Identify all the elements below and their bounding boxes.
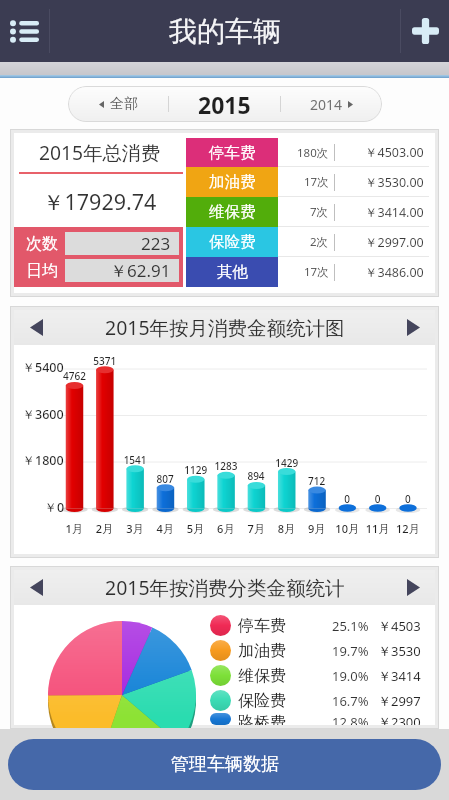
staticText: 19.0% <box>332 667 369 685</box>
staticText: 16.7% <box>332 692 369 710</box>
staticText: 其他 <box>217 262 248 282</box>
button[interactable]: Next <box>391 310 435 345</box>
button[interactable]: 保险费 <box>210 688 435 713</box>
staticText: 维保费 <box>209 202 256 222</box>
button[interactable]: Add <box>401 0 449 62</box>
staticText: 次数 <box>26 234 58 254</box>
button[interactable]: Previous <box>14 570 58 605</box>
staticText: 17次 <box>304 264 329 280</box>
staticText: 25.1% <box>332 617 369 635</box>
staticText: ￥2997 <box>378 692 421 710</box>
staticText: 2014 <box>310 95 343 114</box>
staticText: ￥3530 <box>378 642 421 660</box>
staticText: ￥2300 <box>378 713 421 725</box>
staticText: 7次 <box>310 204 329 220</box>
staticText: 加油费 <box>209 172 256 192</box>
staticText: 2015年按消费分类金额统计 <box>105 574 345 601</box>
staticText: ￥62.91 <box>110 259 171 282</box>
button[interactable]: 维保费 <box>210 663 435 688</box>
staticText: 2015年按月消费金额统计图 <box>105 314 345 341</box>
staticText: 2015 <box>198 89 251 120</box>
staticText: 2015年总消费 <box>39 139 161 165</box>
staticText: 223 <box>141 232 171 255</box>
staticText: 维保费 <box>238 666 286 686</box>
staticText: 停车费 <box>209 143 256 163</box>
staticText: ￥3486.00 <box>365 264 424 281</box>
button[interactable]: 路桥费 <box>210 713 435 725</box>
button[interactable]: 全部 <box>68 86 168 122</box>
button[interactable]: Menu <box>0 0 49 62</box>
staticText: 19.7% <box>332 642 369 660</box>
staticText: 日均 <box>26 261 58 281</box>
staticText: 17次 <box>304 174 329 190</box>
staticText: ￥4503 <box>378 617 421 635</box>
button[interactable]: 管理车辆数据 <box>8 739 441 790</box>
staticText: ￥2997.00 <box>365 234 424 251</box>
button[interactable]: 2014 <box>281 86 382 122</box>
staticText: 2次 <box>310 234 329 250</box>
button[interactable]: Next <box>391 570 435 605</box>
staticText: ￥3530.00 <box>365 174 424 191</box>
staticText: 加油费 <box>238 641 286 661</box>
button[interactable]: 停车费 <box>210 613 435 638</box>
staticText: 12.8% <box>332 713 369 725</box>
button[interactable]: 加油费 <box>210 638 435 663</box>
staticText: 保险费 <box>238 691 286 711</box>
staticText: ￥17929.74 <box>43 187 157 216</box>
button[interactable]: Previous <box>14 310 58 345</box>
staticText: 我的车辆 <box>169 14 281 49</box>
staticText: 保险费 <box>209 232 256 252</box>
staticText: ￥3414.00 <box>365 204 424 221</box>
staticText: 管理车辆数据 <box>171 753 279 776</box>
staticText: ￥4503.00 <box>365 144 424 161</box>
button[interactable]: 2015 <box>169 86 280 122</box>
staticText: 停车费 <box>238 616 286 636</box>
staticText: 路桥费 <box>238 713 286 725</box>
staticText: 全部 <box>110 95 138 113</box>
staticText: 180次 <box>297 145 329 161</box>
staticText: ￥3414 <box>378 667 421 685</box>
